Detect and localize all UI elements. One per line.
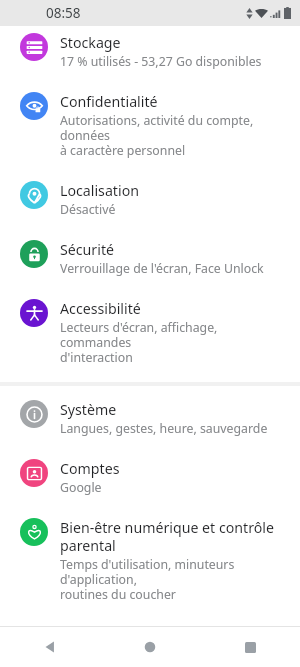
staticText: Langues, gestes, heure, sauvegarde — [60, 420, 268, 437]
button[interactable]: Accessibilité — [0, 288, 300, 377]
button[interactable]: Bien-être numérique et contrôle parental — [0, 507, 300, 614]
button[interactable]: Localisation — [0, 170, 300, 229]
staticText: Comptes — [60, 459, 120, 478]
button[interactable]: Sécurité — [0, 229, 300, 288]
staticText: Localisation — [60, 181, 139, 200]
staticText: Lecteurs d'écran, affichage, commandes d… — [60, 319, 288, 366]
button[interactable]: Système — [0, 389, 300, 448]
staticText: 08:58 — [46, 4, 81, 22]
button[interactable]: Stockage — [0, 26, 300, 81]
button[interactable]: Home — [100, 627, 200, 667]
staticText: Confidentialité — [60, 92, 158, 111]
button[interactable]: Confidentialité — [0, 81, 300, 170]
button[interactable]: Back — [0, 627, 100, 667]
staticText: Sécurité — [60, 240, 115, 259]
staticText: 17 % utilisés - 53,27 Go disponibles — [60, 53, 262, 70]
staticText: Autorisations, activité du compte, donné… — [60, 112, 288, 159]
staticText: Bien-être numérique et contrôle parental — [60, 518, 275, 555]
staticText: Accessibilité — [60, 299, 141, 318]
staticText: Google — [60, 479, 102, 496]
staticText: Temps d'utilisation, minuteurs d'applica… — [60, 556, 288, 603]
staticText: Verrouillage de l'écran, Face Unlock — [60, 260, 264, 277]
button[interactable]: Comptes — [0, 448, 300, 507]
staticText: Système — [60, 400, 117, 419]
staticText: Désactivé — [60, 201, 116, 218]
staticText: Stockage — [60, 33, 121, 52]
button[interactable]: Recent apps — [200, 627, 300, 667]
